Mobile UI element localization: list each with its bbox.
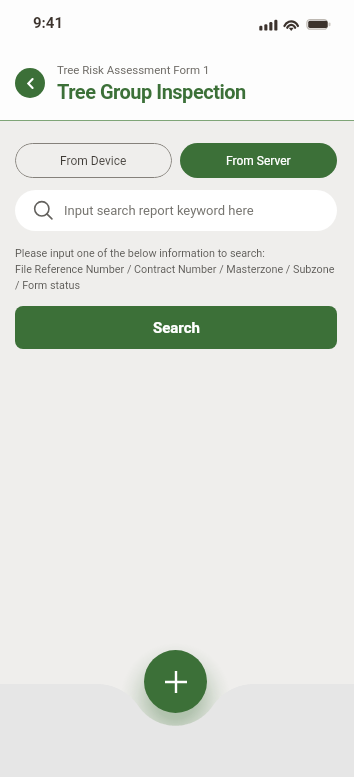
staticText: From Device [60, 154, 127, 168]
staticText: Search [153, 319, 200, 337]
button[interactable]: Input search report keyword here [15, 190, 337, 231]
button[interactable]: Search [15, 306, 337, 349]
button[interactable]: From Device [15, 143, 172, 178]
staticText: Input search report keyword here [64, 203, 254, 218]
staticText: Tree Group Inspection [57, 80, 246, 103]
button[interactable]: From Server [180, 143, 337, 178]
staticText: Tree Risk Assessment Form 1 [57, 63, 210, 76]
button[interactable]: Back [15, 68, 45, 98]
staticText: Please input one of the below informatio… [15, 247, 335, 291]
button[interactable]: Add new form [144, 650, 207, 713]
staticText: 9:41 [33, 14, 64, 32]
staticText: From Server [226, 154, 291, 168]
